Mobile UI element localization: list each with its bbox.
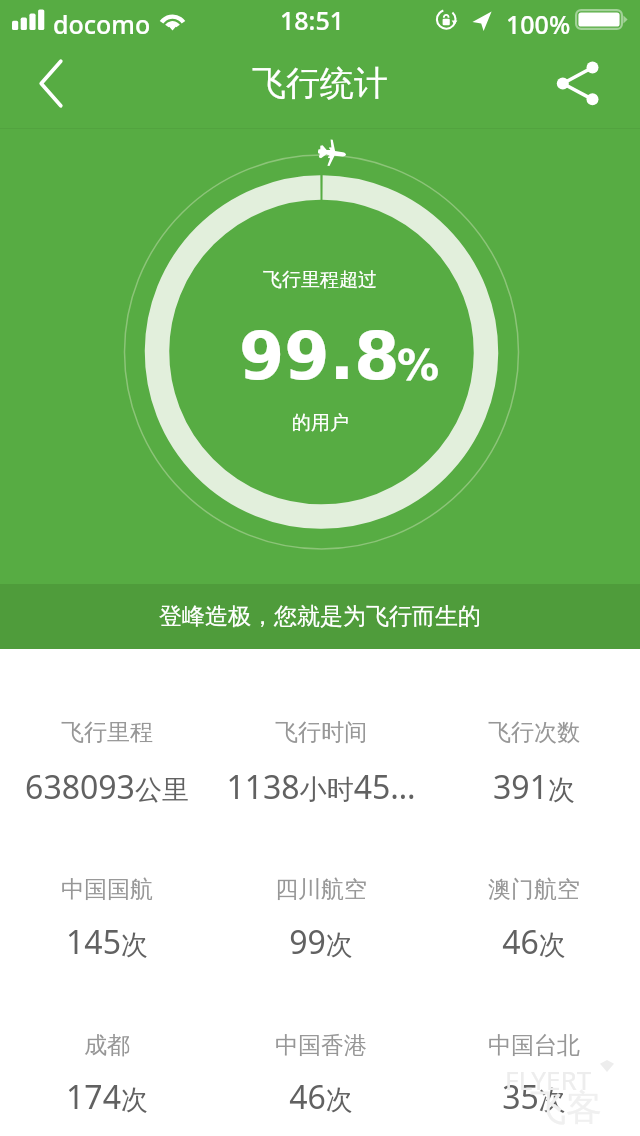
staticText: 登峰造极，您就是为飞行而生的 [159,602,481,631]
staticText: 145次 [66,920,148,964]
button[interactable]: 35次 [427,1075,640,1119]
staticText: 飞行时间 [275,718,367,747]
staticText: 成都 [84,1031,130,1060]
button[interactable]: 1138小时45… [214,765,427,809]
staticText: % [397,341,440,390]
staticText: 的用户 [292,411,349,435]
staticText: 中国香港 [275,1031,367,1060]
staticText: 澳门航空 [488,875,580,904]
button[interactable]: 99次 [214,920,427,964]
button[interactable]: 46次 [214,1075,427,1119]
button[interactable]: Share [556,40,640,129]
staticText: 飞行次数 [488,718,580,747]
staticText: 46次 [289,1075,353,1119]
staticText: 391次 [493,765,575,809]
button[interactable]: 飞行里程 [0,718,214,747]
button[interactable]: 飞行时间 [214,718,427,747]
staticText: 99次 [289,920,353,964]
staticText: 飞行统计 [252,62,388,105]
staticText: 中国国航 [61,875,153,904]
staticText: 174次 [66,1075,148,1119]
button[interactable]: 中国国航 [0,875,214,904]
staticText: FLYERT [505,1062,592,1097]
staticText: 飞行里程 [61,718,153,747]
staticText: 四川航空 [275,875,367,904]
staticText: 99.8 [239,319,400,395]
button[interactable]: 174次 [0,1075,214,1119]
staticText: 35次 [502,1075,566,1119]
button[interactable]: 澳门航空 [427,875,640,904]
staticText: 中国台北 [488,1031,580,1060]
button[interactable]: 中国台北 [427,1031,640,1060]
staticText: 100% [506,7,571,41]
staticText: docomo [53,7,151,41]
staticText: 18:51 [280,3,345,37]
button[interactable]: 四川航空 [214,875,427,904]
button[interactable]: 145次 [0,920,214,964]
staticText: 飞客 [530,1085,602,1130]
button[interactable]: 638093公里 [0,765,214,809]
button[interactable]: 成都 [0,1031,214,1060]
staticText: 638093公里 [25,765,189,809]
button[interactable]: 46次 [427,920,640,964]
button[interactable]: Back [16,40,88,129]
button[interactable]: 中国香港 [214,1031,427,1060]
staticText: 1138小时45… [226,765,416,809]
button[interactable]: 391次 [427,765,640,809]
staticText: 飞行里程超过 [263,268,377,292]
staticText: 46次 [502,920,566,964]
button[interactable]: 飞行次数 [427,718,640,747]
